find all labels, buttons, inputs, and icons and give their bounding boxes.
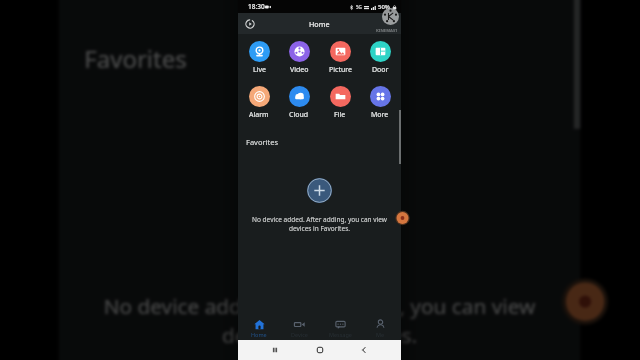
button[interactable]: File <box>321 86 359 120</box>
staticText: No device added. After adding, you can v… <box>250 215 389 233</box>
staticText: Video <box>290 65 309 75</box>
button[interactable]: Alarm <box>240 86 278 120</box>
button[interactable]: Picture <box>321 41 359 75</box>
button[interactable]: Live <box>240 41 278 75</box>
staticText: KINEMASTER <box>376 28 397 34</box>
staticText: 50% <box>378 3 390 11</box>
button[interactable]: Device <box>280 312 318 338</box>
button[interactable]: Home <box>240 312 278 338</box>
staticText: Device <box>291 331 308 338</box>
button[interactable]: Me <box>361 312 399 338</box>
staticText: Home <box>309 19 330 29</box>
staticText: 18:30 <box>248 2 265 11</box>
staticText: Home <box>251 331 267 338</box>
staticText: Picture <box>329 65 352 75</box>
staticText: File <box>334 110 346 120</box>
button[interactable]: Add device <box>307 178 332 203</box>
staticText: Message <box>329 331 352 338</box>
staticText: No device added. After adding, you can v… <box>97 292 542 350</box>
staticText: 5G <box>356 4 362 10</box>
staticText: Alarm <box>249 110 269 120</box>
staticText: Live <box>253 65 266 75</box>
button[interactable]: Home <box>312 342 328 358</box>
button[interactable]: Cloud <box>280 86 318 120</box>
button[interactable]: Message <box>321 312 359 338</box>
staticText: Door <box>372 65 389 75</box>
staticText: Favorites <box>84 42 190 74</box>
button[interactable]: History <box>243 17 257 31</box>
button[interactable]: Add device <box>279 174 359 254</box>
button[interactable]: Door <box>361 41 399 75</box>
button[interactable]: More <box>361 86 399 120</box>
button[interactable]: Video <box>280 41 318 75</box>
button[interactable]: Recents <box>267 342 283 358</box>
staticText: Cloud <box>289 110 309 120</box>
button[interactable]: Back <box>356 342 372 358</box>
staticText: More <box>371 110 389 120</box>
staticText: Me <box>376 331 385 338</box>
staticText: Favorites <box>246 137 279 147</box>
